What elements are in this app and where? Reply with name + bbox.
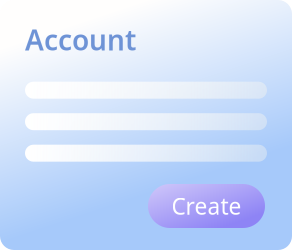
- button[interactable]: Create: [148, 184, 265, 228]
- staticText: Create: [171, 191, 241, 221]
- staticText: Account: [25, 21, 136, 58]
